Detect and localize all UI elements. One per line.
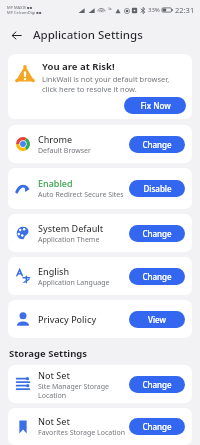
button[interactable]: Change [129, 268, 185, 285]
button[interactable]: You are at Risk! [8, 54, 192, 119]
staticText: Enabled [38, 177, 73, 189]
staticText: LinkWall is not your default browser, cl… [42, 74, 186, 94]
staticText: Chrome [38, 133, 73, 145]
staticText: 22:31 [175, 5, 195, 15]
staticText: Disable [143, 183, 172, 194]
staticText: MY CelcomDigi ▪▪ [7, 10, 42, 15]
staticText: Application Settings [33, 27, 143, 43]
staticText: Change [142, 139, 172, 150]
button[interactable]: Disable [129, 180, 185, 197]
staticText: Application Theme [38, 235, 100, 245]
button[interactable]: Fix Now [124, 97, 186, 114]
staticText: 33% [148, 6, 160, 14]
staticText: MY MAXIS ▪▪ [7, 5, 33, 10]
staticText: Change [142, 228, 172, 239]
button[interactable]: English [8, 257, 192, 295]
button[interactable]: Chrome [8, 125, 192, 163]
button[interactable]: Change [129, 225, 185, 242]
staticText: Change [142, 379, 172, 390]
button[interactable]: Back [5, 24, 27, 46]
staticText: Application Language [38, 278, 110, 288]
staticText: ³⁴ [108, 7, 112, 14]
button[interactable]: Not Set [8, 408, 192, 445]
staticText: Fix Now [140, 100, 171, 111]
staticText: Not Set [38, 369, 70, 381]
staticText: Change [142, 421, 172, 432]
button[interactable]: Enabled [8, 168, 192, 209]
button[interactable]: View [129, 311, 185, 328]
staticText: You are at Risk! [42, 60, 115, 73]
staticText: Privacy Policy [38, 313, 97, 325]
button[interactable]: Change [129, 136, 185, 153]
staticText: View [148, 314, 166, 325]
staticText: Favorites Storage Location [38, 428, 126, 438]
staticText: System Default [38, 222, 104, 234]
button[interactable]: System Default [8, 214, 192, 252]
button[interactable]: Privacy Policy [8, 300, 192, 338]
staticText: Default Browser [38, 146, 91, 156]
staticText: Site Manager Storage Location [38, 382, 127, 400]
button[interactable]: Change [129, 418, 185, 435]
staticText: English [38, 265, 70, 277]
button[interactable]: Not Set [8, 365, 192, 403]
staticText: Auto Redirect Secure Sites [38, 190, 124, 200]
staticText: Storage Settings [9, 347, 88, 360]
staticText: Not Set [38, 415, 70, 427]
staticText: Change [142, 271, 172, 282]
button[interactable]: Change [129, 376, 185, 393]
